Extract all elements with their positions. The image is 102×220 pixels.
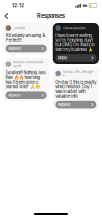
staticText: Responses (37, 13, 65, 19)
staticText: Excellent!! Nothing less than 🔥🔥 how lon… (6, 70, 46, 89)
staticText: sherwajomber (63, 26, 86, 30)
staticText: Replied (58, 102, 70, 107)
staticText: I have been traveling so I'm finishing d… (55, 33, 94, 52)
button[interactable]: Back (2, 11, 11, 20)
button[interactable]: Replied (6, 91, 47, 99)
button[interactable]: sherwajomber (53, 23, 99, 64)
staticText: Replied (8, 46, 20, 51)
staticText: Replied (8, 93, 20, 98)
staticText: _mahdi (13, 26, 25, 30)
staticText: marcus.merchandise.fit (13, 60, 44, 68)
button[interactable]: marcus.merchandise.fit (3, 58, 49, 101)
button[interactable]: luxury_life_designs (53, 67, 99, 111)
button[interactable]: Reply (55, 54, 96, 62)
button[interactable]: Replied (6, 45, 47, 52)
staticText: On day 3, this is exactly what I needed.… (55, 80, 96, 99)
button[interactable]: Replied (55, 101, 96, 108)
button[interactable]: _mahdi (3, 23, 49, 55)
staticText: Absolutely amazing & Perfect!!! (6, 33, 46, 42)
staticText: 12:12 (12, 3, 24, 8)
staticText: Reply (58, 56, 67, 60)
staticText: luxury_life_designs (63, 69, 94, 78)
